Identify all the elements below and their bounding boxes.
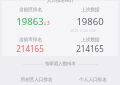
staticText: 按家庭人数排名 (45, 61, 76, 67)
button[interactable]: 当前区排名 (0, 0, 60, 29)
staticText: 214165 (76, 43, 104, 54)
button[interactable]: 当前市排名 (0, 29, 60, 58)
staticText: 2023-11-02 10:2 (70, 28, 96, 33)
staticText: 当前市排名 (19, 37, 42, 43)
staticText: 上次数据 (81, 37, 100, 43)
button[interactable]: 上次数据 (60, 29, 120, 58)
staticText: 个人人口排名 (79, 77, 107, 83)
staticText: 214165 (16, 43, 44, 54)
staticText: 19863 (16, 15, 44, 28)
staticText: ↓3 (43, 20, 50, 26)
button[interactable]: 个人人口排名 (60, 73, 120, 85)
staticText: 当前区排名 (19, 7, 42, 13)
staticText: 所在区人口排名 (20, 77, 53, 83)
staticText: 人口排名统计 (47, 0, 74, 4)
staticText: 19860 (76, 15, 104, 28)
button[interactable]: 所在区人口排名 (0, 73, 60, 85)
button[interactable]: 上次数据 (60, 0, 120, 29)
staticText: 上次数据 (81, 7, 100, 13)
